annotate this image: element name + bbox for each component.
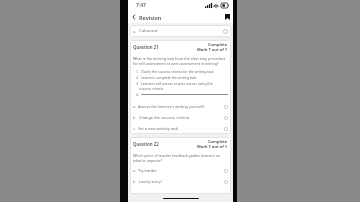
staticText: success criteria bbox=[139, 86, 164, 91]
staticText: what to improve? bbox=[133, 158, 163, 163]
staticText: for self-assessment or peer-assessment i… bbox=[133, 61, 219, 66]
staticText: Question 21 bbox=[133, 44, 159, 50]
staticText: a. bbox=[133, 104, 136, 109]
staticText: Complete bbox=[208, 42, 228, 47]
staticText: Revision bbox=[139, 14, 162, 21]
button[interactable]: b. bbox=[130, 176, 231, 187]
staticText: Assess the learner's writing yourself. bbox=[138, 104, 205, 109]
button[interactable]: c. bbox=[130, 123, 231, 134]
staticText: b. bbox=[133, 179, 137, 184]
staticText: 1. bbox=[136, 69, 139, 74]
staticText: 4. bbox=[136, 92, 139, 97]
staticText: Mark 1 out of 1 bbox=[197, 47, 228, 52]
button[interactable]: a. bbox=[130, 101, 231, 112]
staticText: Question 22 bbox=[133, 141, 159, 147]
staticText: Complete bbox=[208, 139, 228, 144]
staticText: c. bbox=[133, 126, 136, 131]
staticText: b. bbox=[133, 115, 137, 120]
staticText: Learners complete the writing task bbox=[141, 75, 197, 80]
staticText: What is the missing step from the clear … bbox=[133, 56, 226, 61]
staticText: Learners self-assess or peer-assess usin… bbox=[141, 81, 213, 86]
staticText: 2. bbox=[136, 75, 139, 80]
staticText: a. bbox=[133, 168, 136, 173]
button[interactable]: a. bbox=[130, 25, 231, 37]
staticText: Lovely story! bbox=[139, 179, 162, 184]
staticText: 7:47 bbox=[136, 2, 146, 9]
button[interactable]: Back bbox=[128, 11, 139, 23]
button[interactable]: c. bbox=[130, 187, 231, 194]
button[interactable]: a. bbox=[130, 165, 231, 176]
staticText: a. bbox=[133, 29, 137, 34]
staticText: Mark 1 out of 1 bbox=[197, 144, 228, 149]
staticText: Set a new writing task. bbox=[138, 126, 179, 131]
button[interactable]: b. bbox=[130, 112, 231, 123]
staticText: Coloured bbox=[139, 28, 157, 34]
button[interactable]: Bookmark bbox=[221, 11, 233, 23]
staticText: Which piece of teacher feedback guides l… bbox=[133, 153, 221, 158]
staticText: Change the success criteria. bbox=[139, 115, 190, 120]
staticText: Clarify the success criteria for the wri… bbox=[141, 69, 214, 74]
staticText: Try harder. bbox=[138, 168, 158, 173]
staticText: 3. bbox=[136, 81, 139, 86]
